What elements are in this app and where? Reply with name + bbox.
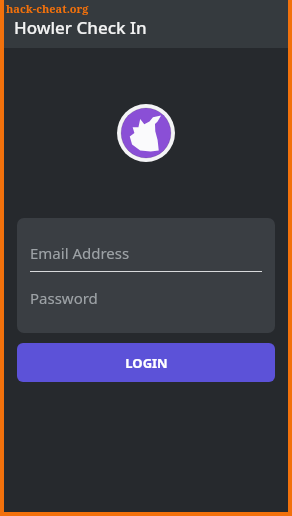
other: Howler logo xyxy=(117,104,175,162)
staticText: Password xyxy=(30,288,98,308)
button[interactable]: LOGIN xyxy=(17,343,275,382)
staticText: Email Address xyxy=(30,243,130,263)
staticText: LOGIN xyxy=(125,354,168,372)
button[interactable]: Email Address xyxy=(17,234,275,272)
button[interactable]: Password xyxy=(17,281,275,315)
staticText: Howler Check In xyxy=(14,16,147,39)
staticText: hack-cheat.org xyxy=(6,1,89,16)
